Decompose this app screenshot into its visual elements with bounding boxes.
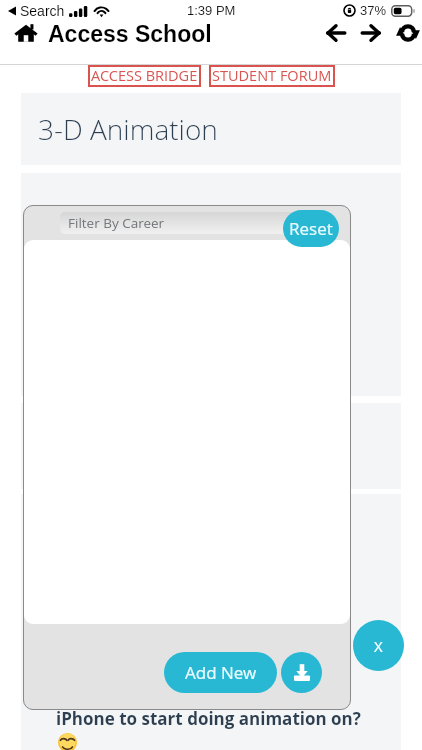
button[interactable]: Refresh — [394, 21, 422, 44]
staticText: ACCESS BRIDGE — [91, 66, 198, 86]
staticText: 37% — [360, 3, 387, 18]
staticText: 3-D Animation — [38, 110, 218, 148]
staticText: iPhone to start doing animation on? — [56, 707, 361, 730]
button[interactable]: Back — [322, 21, 350, 44]
staticText: Access School — [48, 21, 212, 44]
staticText: 1:39 PM — [187, 3, 236, 18]
button[interactable]: Forward — [357, 21, 385, 44]
button[interactable]: Add New — [164, 652, 277, 693]
staticText: X — [374, 636, 383, 656]
button[interactable]: Reset — [283, 210, 339, 247]
button[interactable]: Access School — [14, 21, 212, 44]
staticText: Search — [20, 3, 65, 19]
button[interactable]: STUDENT FORUM — [212, 65, 332, 87]
staticText: Filter By Career — [68, 214, 165, 232]
staticText: Add New — [185, 661, 257, 684]
staticText: STUDENT FORUM — [212, 66, 332, 86]
button[interactable]: Download — [281, 652, 322, 693]
staticText: Reset — [289, 217, 333, 240]
button[interactable]: Filter By Career — [60, 212, 330, 234]
button[interactable]: ACCESS BRIDGE — [91, 65, 198, 87]
button[interactable]: Close — [353, 620, 404, 671]
